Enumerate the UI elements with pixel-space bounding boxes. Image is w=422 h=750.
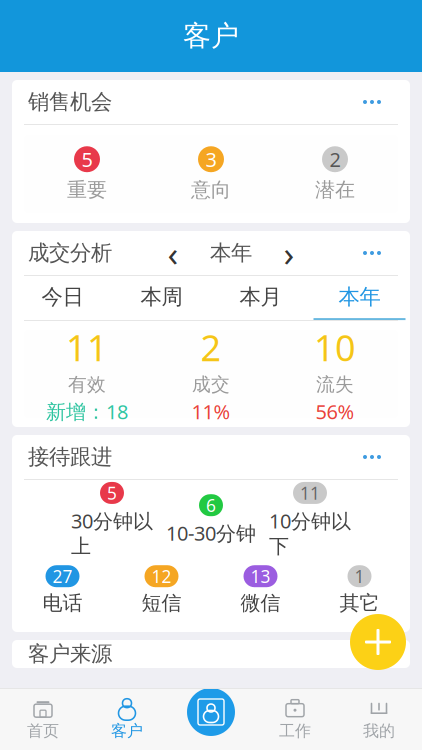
button[interactable]: 27 bbox=[13, 566, 112, 614]
staticText: 成交分析 bbox=[28, 240, 112, 266]
staticText: 10-30分钟 bbox=[166, 520, 256, 546]
staticText: 56% bbox=[315, 398, 354, 425]
staticText: 短信 bbox=[141, 591, 181, 615]
staticText: 11% bbox=[191, 398, 230, 425]
button[interactable]: 下一个周期 bbox=[272, 236, 306, 270]
staticText: › bbox=[283, 230, 294, 276]
staticText: 销售机会 bbox=[28, 89, 112, 115]
staticText: 30分钟以上 bbox=[71, 507, 153, 558]
staticText: 微信 bbox=[240, 591, 280, 615]
button[interactable]: 上一个周期 bbox=[156, 236, 190, 270]
button[interactable]: 11 bbox=[25, 330, 149, 418]
button[interactable]: 10 bbox=[273, 330, 397, 418]
staticText: 13 bbox=[250, 565, 270, 588]
button[interactable]: 我的 bbox=[337, 695, 421, 743]
staticText: 本年 bbox=[338, 284, 380, 310]
staticText: 意向 bbox=[191, 177, 231, 202]
staticText: 10分钟以下 bbox=[269, 507, 351, 558]
staticText: 潜在 bbox=[315, 177, 355, 202]
staticText: 27 bbox=[52, 565, 72, 588]
staticText: 2 bbox=[200, 323, 221, 371]
staticText: 有效 bbox=[68, 373, 106, 396]
button[interactable]: 今日 bbox=[13, 276, 112, 320]
button[interactable]: 本周 bbox=[112, 276, 211, 320]
staticText: 本年 bbox=[210, 240, 252, 266]
staticText: 新增：18 bbox=[46, 398, 128, 425]
button[interactable]: 更多 bbox=[350, 236, 394, 270]
button[interactable]: 新增 bbox=[346, 610, 410, 674]
staticText: 电话 bbox=[42, 591, 82, 615]
staticText: 11 bbox=[66, 323, 108, 371]
button[interactable]: 更多 bbox=[350, 440, 394, 474]
button[interactable]: 更多 bbox=[350, 85, 394, 119]
button[interactable]: 工作 bbox=[253, 695, 337, 743]
button[interactable]: 12 bbox=[112, 566, 211, 614]
staticText: 本月 bbox=[239, 284, 281, 310]
staticText: 11 bbox=[300, 481, 320, 504]
button[interactable]: 首页 bbox=[1, 695, 85, 743]
staticText: 10 bbox=[314, 323, 356, 371]
staticText: 5 bbox=[81, 146, 92, 172]
staticText: 12 bbox=[151, 565, 171, 588]
staticText: 今日 bbox=[41, 284, 83, 310]
button[interactable]: 扫描客户 bbox=[181, 682, 241, 742]
staticText: 重要 bbox=[67, 177, 107, 202]
button[interactable]: 5 bbox=[62, 496, 161, 544]
staticText: 客户来源 bbox=[28, 641, 112, 667]
staticText: 客户 bbox=[183, 19, 239, 53]
button[interactable]: 2 bbox=[273, 135, 397, 213]
button[interactable]: 2 bbox=[149, 330, 273, 418]
staticText: 我的 bbox=[363, 721, 395, 741]
staticText: 1 bbox=[354, 565, 364, 588]
staticText: 接待跟进 bbox=[28, 444, 112, 470]
staticText: 5 bbox=[107, 481, 117, 504]
button[interactable]: 更多 bbox=[350, 637, 394, 671]
staticText: 成交 bbox=[192, 373, 230, 396]
button[interactable]: 1 bbox=[310, 566, 409, 614]
staticText: 工作 bbox=[279, 721, 311, 741]
staticText: ‹ bbox=[167, 230, 178, 276]
button[interactable]: 5 bbox=[25, 135, 149, 213]
staticText: 首页 bbox=[27, 721, 59, 741]
button[interactable]: 6 bbox=[161, 496, 260, 544]
button[interactable]: 11 bbox=[260, 496, 359, 544]
staticText: 2 bbox=[329, 146, 340, 172]
staticText: 其它 bbox=[339, 591, 379, 615]
button[interactable]: 客户 bbox=[85, 695, 169, 743]
button[interactable]: 本月 bbox=[211, 276, 310, 320]
staticText: 3 bbox=[205, 146, 216, 172]
button[interactable]: 3 bbox=[149, 135, 273, 213]
staticText: 客户 bbox=[111, 721, 143, 741]
staticText: 6 bbox=[206, 494, 216, 517]
staticText: 流失 bbox=[316, 373, 354, 396]
staticText: 本周 bbox=[140, 284, 182, 310]
button[interactable]: 本年 bbox=[310, 276, 409, 320]
button[interactable]: 13 bbox=[211, 566, 310, 614]
